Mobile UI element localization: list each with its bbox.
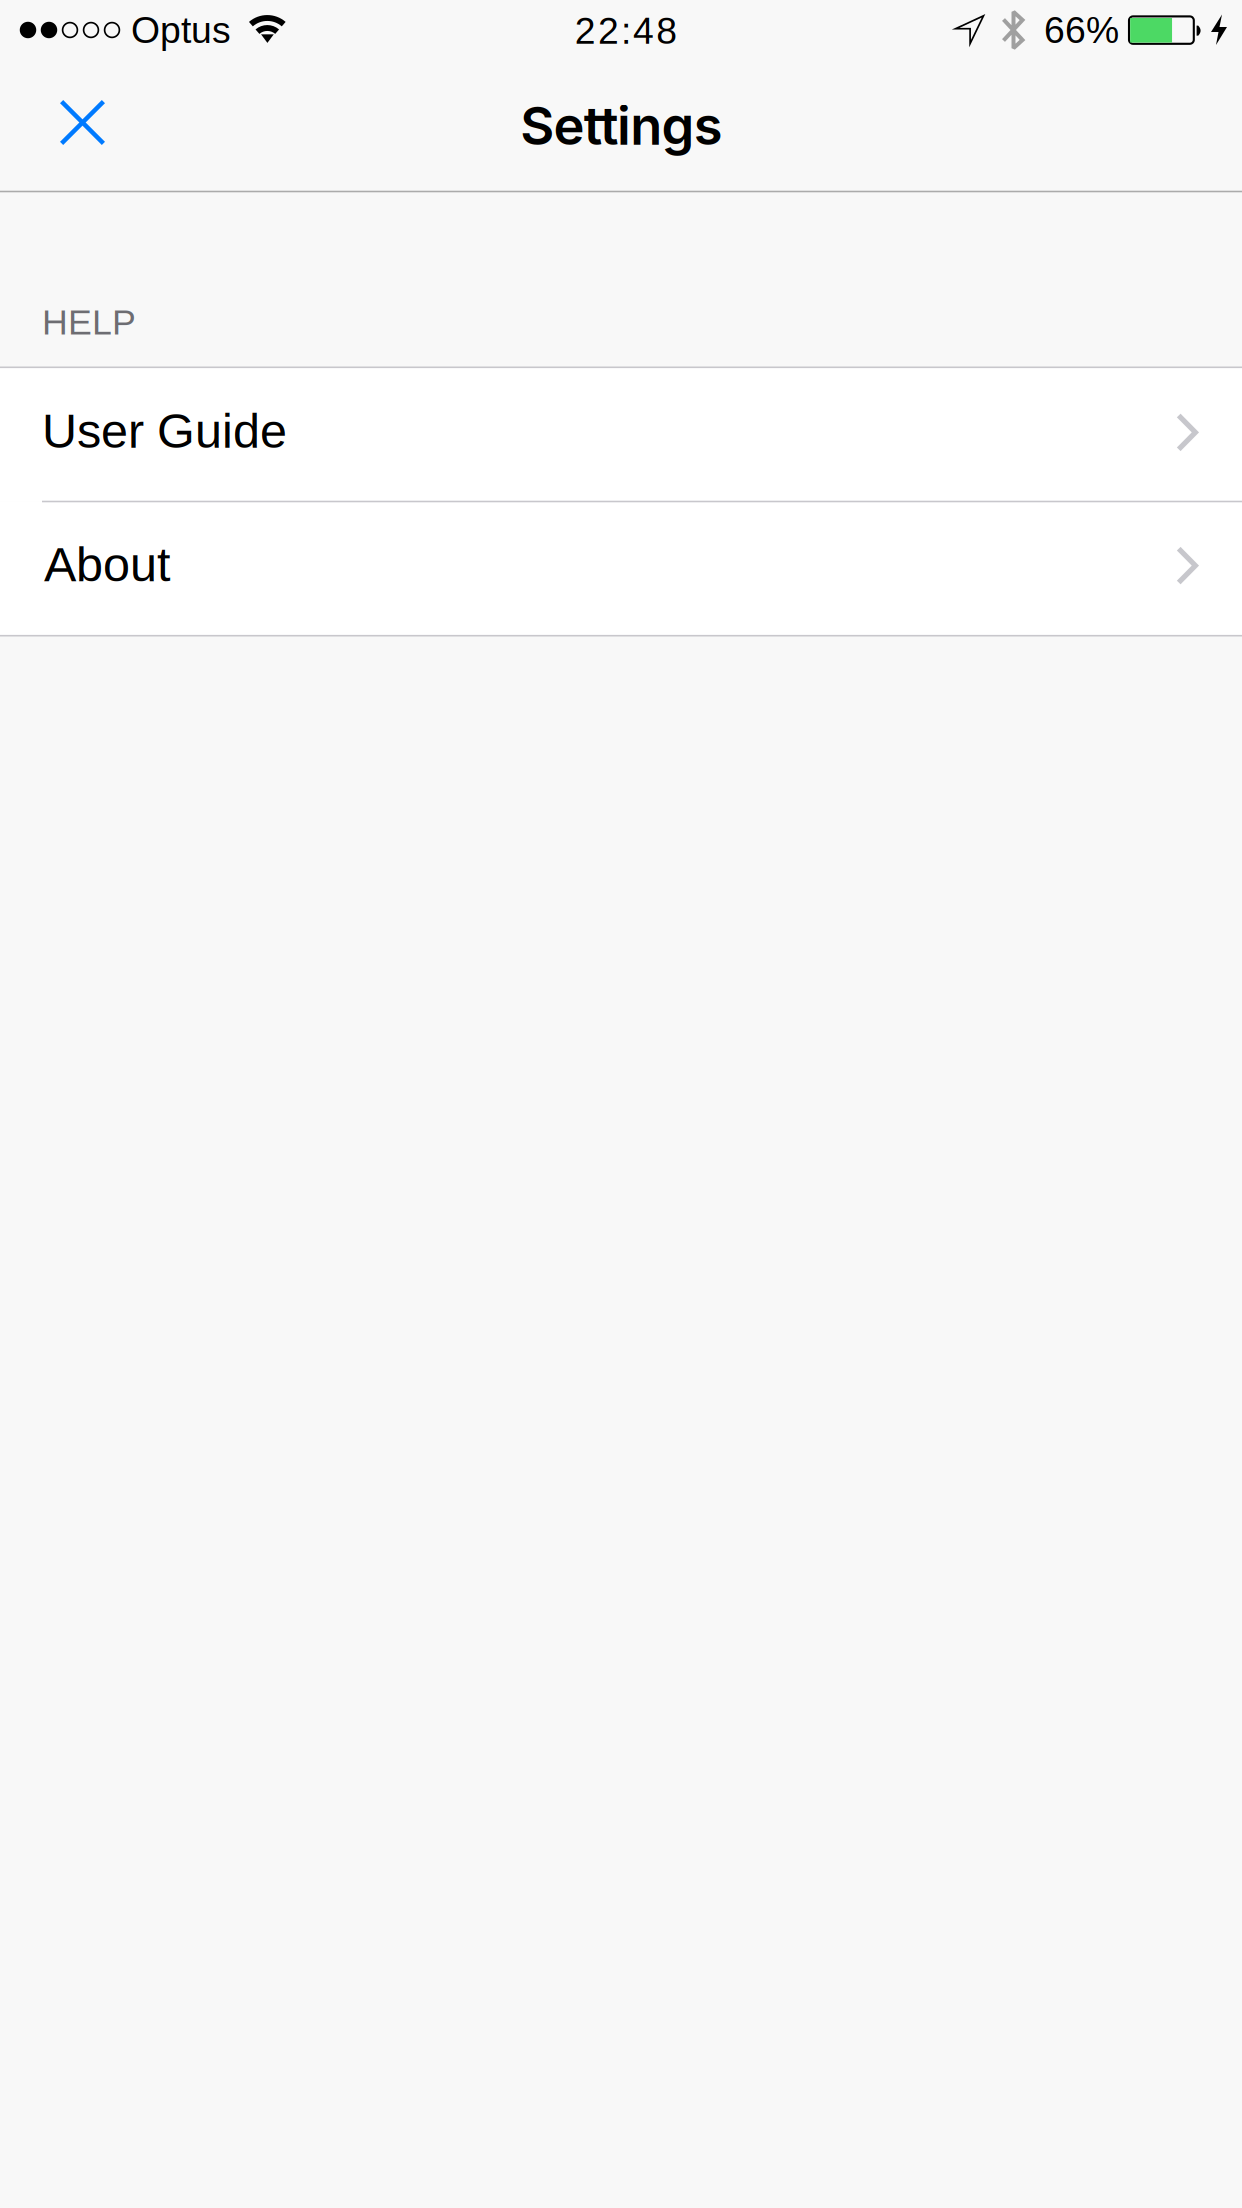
staticText: HELP — [42, 302, 136, 342]
button[interactable]: Close — [42, 81, 123, 164]
staticText: 22:48 — [575, 10, 677, 52]
staticText: Settings — [520, 94, 723, 157]
staticText: Optus — [131, 9, 231, 51]
staticText: User Guide — [42, 404, 287, 458]
staticText: 66% — [1044, 9, 1119, 51]
staticText: About — [44, 537, 170, 592]
button[interactable]: About — [0, 501, 1242, 636]
button[interactable]: User Guide — [0, 367, 1242, 501]
